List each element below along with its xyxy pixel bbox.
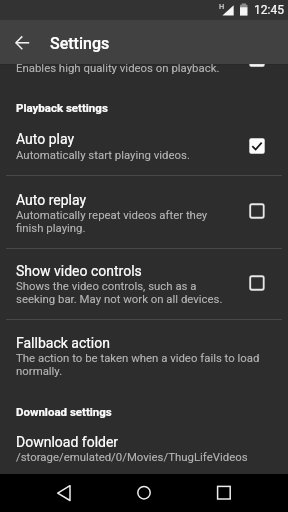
staticText: Settings (50, 34, 110, 53)
button[interactable]: Back (44, 474, 84, 512)
staticText: H (219, 2, 225, 11)
staticText: 12:45 (254, 3, 284, 17)
staticText: Automatically start playing videos. (16, 148, 190, 161)
staticText: Download folder (16, 434, 119, 450)
staticText: Show video controls (16, 263, 142, 279)
button[interactable]: Checked (237, 39, 277, 79)
button[interactable]: Navigate up (0, 20, 44, 64)
button[interactable]: Home (124, 474, 164, 512)
button[interactable]: Not checked (237, 263, 277, 303)
staticText: Download settings (16, 405, 112, 418)
button[interactable] (0, 422, 288, 474)
button[interactable] (0, 248, 288, 319)
staticText: Auto play (16, 131, 75, 147)
button[interactable]: Recent apps (204, 474, 244, 512)
button[interactable]: Checked (237, 126, 277, 166)
staticText: The action to be taken when a video fail… (16, 351, 260, 377)
button[interactable] (0, 64, 288, 75)
staticText: /storage/emulated/0/Movies/ThugLifeVideo… (16, 450, 248, 463)
staticText: Automatically repeat videos after they f… (16, 208, 208, 234)
staticText: Fallback action (16, 335, 110, 351)
button[interactable]: Not checked (237, 191, 277, 231)
staticText: Playback settings (16, 101, 108, 114)
button[interactable] (0, 118, 288, 175)
staticText: Enables high quality videos on playback. (16, 61, 220, 74)
staticText: Auto replay (16, 192, 87, 208)
button[interactable] (0, 176, 288, 247)
staticText: Shows the video controls, such as a seek… (16, 279, 223, 305)
button[interactable] (0, 320, 288, 390)
